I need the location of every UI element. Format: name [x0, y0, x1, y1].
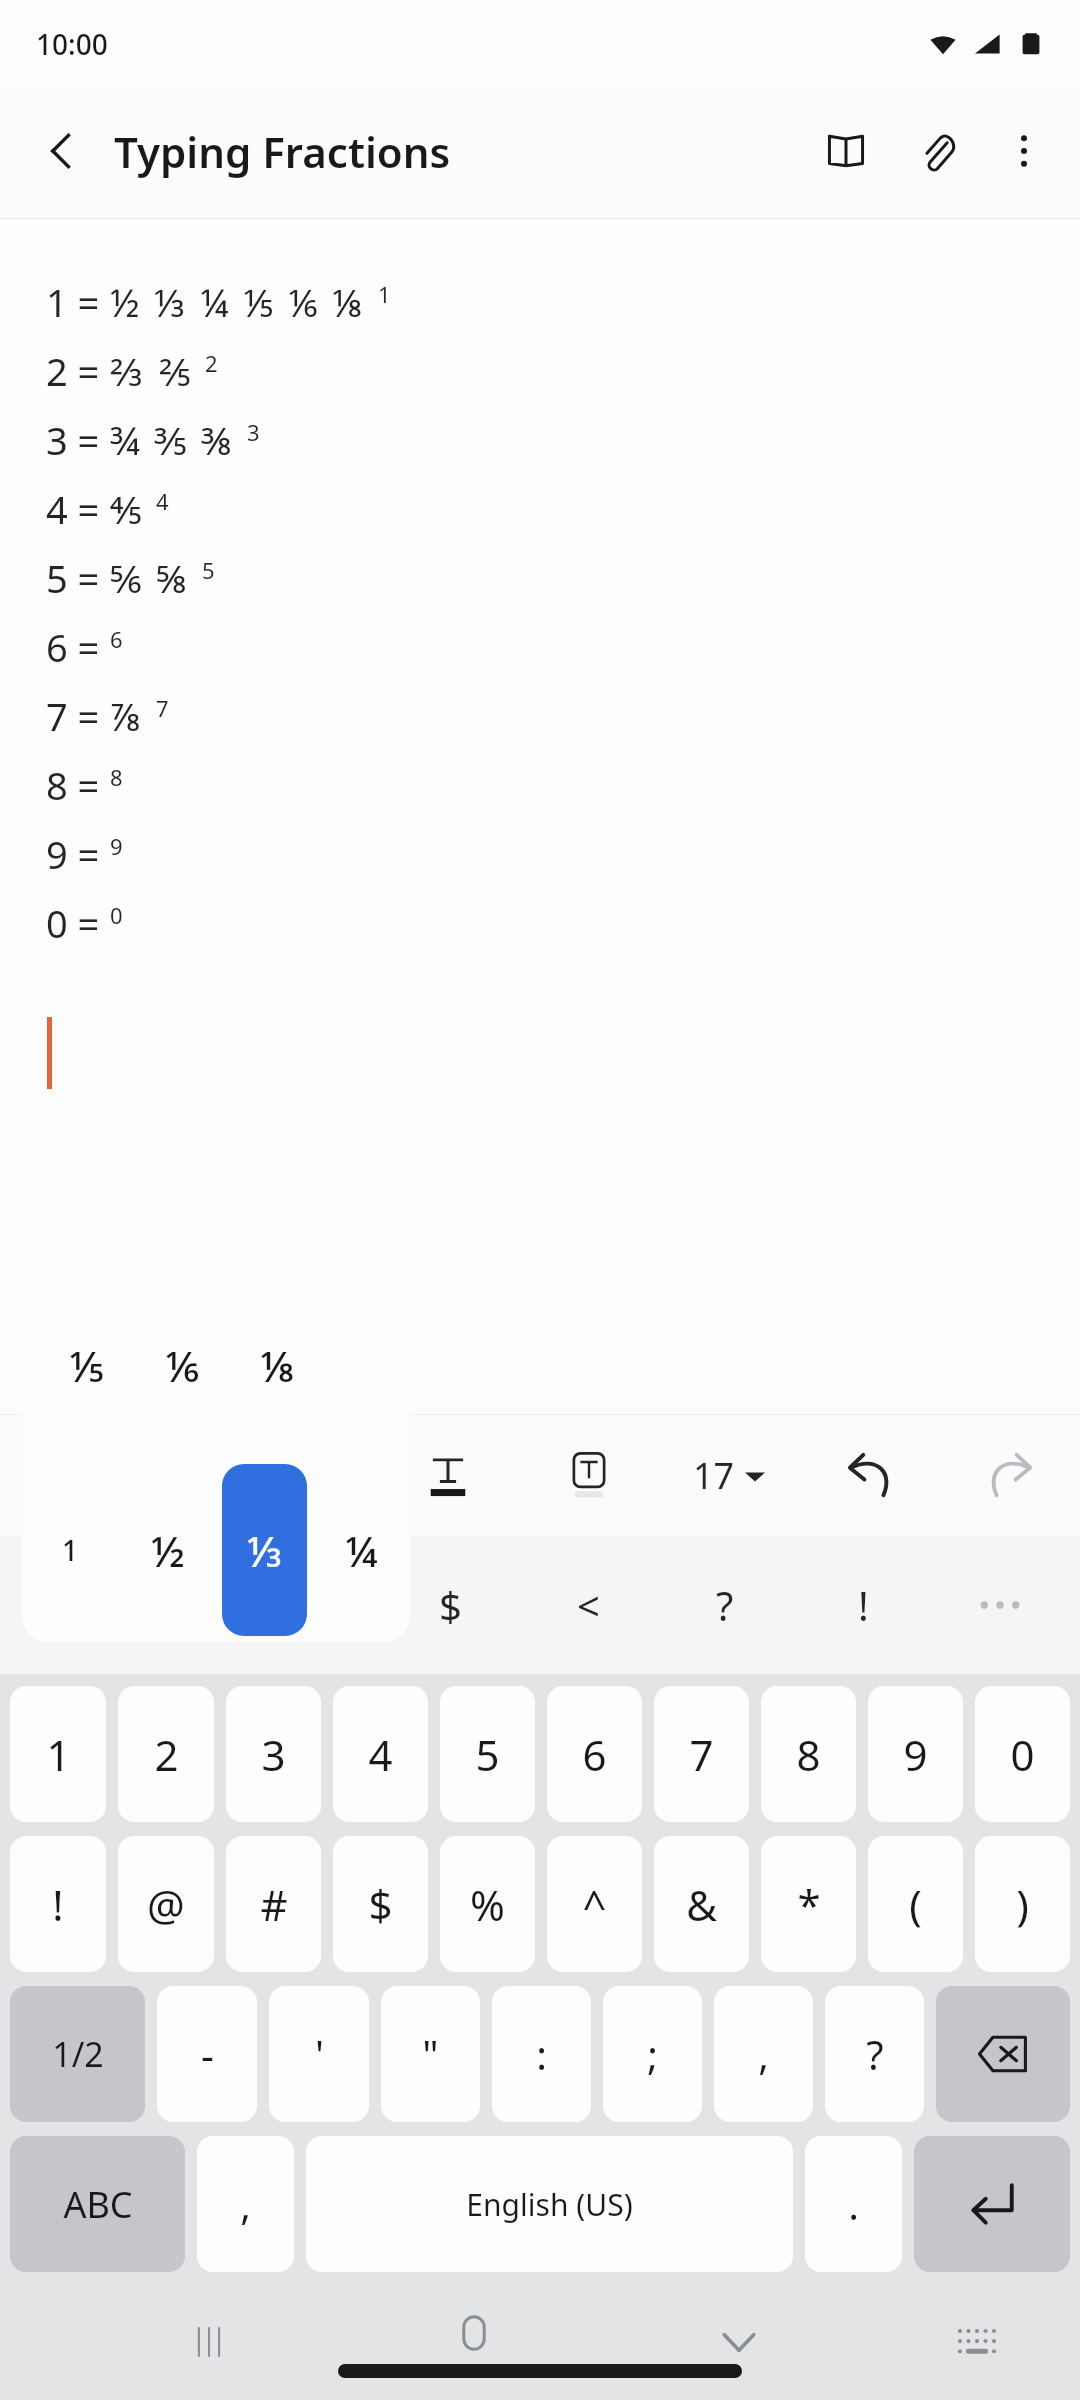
staticText: ,	[240, 2177, 251, 2231]
button[interactable]: 1/2	[10, 1986, 145, 2122]
button[interactable]: ¼	[319, 1485, 404, 1615]
staticText: 10:00	[36, 25, 108, 63]
staticText: ¾	[110, 414, 140, 466]
staticText: )	[1016, 1876, 1029, 1933]
button[interactable]: Back	[18, 107, 106, 195]
staticText: 6 =	[46, 621, 110, 673]
button[interactable]: Recents	[164, 2297, 254, 2387]
button[interactable]: :	[492, 1986, 591, 2122]
button[interactable]: ?	[675, 1555, 775, 1655]
staticText: 8	[110, 762, 123, 792]
staticText: 1	[46, 1726, 71, 1783]
button[interactable]: Highlight	[541, 1427, 637, 1523]
button[interactable]: %	[440, 1836, 535, 1972]
staticText: *	[797, 1876, 821, 1933]
staticText: 9	[110, 831, 123, 861]
button[interactable]: Reading mode	[800, 105, 892, 197]
button[interactable]: ⅙	[134, 1300, 230, 1430]
button[interactable]: Text color	[400, 1427, 496, 1523]
button[interactable]: @	[118, 1836, 214, 1972]
button[interactable]: #	[226, 1836, 321, 1972]
button[interactable]: Enter	[914, 2136, 1070, 2272]
button[interactable]: 7	[654, 1686, 749, 1822]
staticText: -	[201, 2027, 214, 2081]
button[interactable]: English (US)	[306, 2136, 793, 2272]
button[interactable]: Attach	[892, 105, 984, 197]
button[interactable]: (	[868, 1836, 963, 1972]
button[interactable]: 5	[440, 1686, 535, 1822]
button[interactable]: )	[975, 1836, 1070, 1972]
button[interactable]: 2	[118, 1686, 214, 1822]
button[interactable]: 6	[547, 1686, 642, 1822]
staticText: 4	[368, 1726, 393, 1783]
button[interactable]: 1	[10, 1686, 106, 1822]
staticText: ⅛	[332, 276, 364, 328]
button[interactable]: !	[10, 1836, 106, 1972]
staticText: ;	[647, 2027, 658, 2081]
staticText: 2	[205, 348, 218, 378]
button[interactable]: <	[538, 1555, 638, 1655]
button[interactable]: Redo	[962, 1427, 1058, 1523]
button[interactable]: 17	[681, 1437, 777, 1514]
button[interactable]: *	[761, 1836, 856, 1972]
staticText: 1 =	[46, 276, 110, 328]
button[interactable]: .	[805, 2136, 902, 2272]
button[interactable]: -	[157, 1986, 257, 2122]
staticText: 9	[903, 1726, 928, 1783]
button[interactable]: '	[269, 1986, 369, 2122]
button[interactable]: 3	[226, 1686, 321, 1822]
button[interactable]: ;	[603, 1986, 702, 2122]
button[interactable]: 1	[28, 1485, 113, 1615]
button[interactable]: 4	[333, 1686, 428, 1822]
button[interactable]: ABC	[10, 2136, 185, 2272]
button[interactable]: ½	[125, 1485, 210, 1615]
button[interactable]: !	[813, 1555, 913, 1655]
staticText: 7 =	[46, 690, 110, 742]
staticText: ?	[866, 2027, 884, 2081]
button[interactable]: ,	[197, 2136, 294, 2272]
button[interactable]: "	[381, 1986, 480, 2122]
staticText: ^	[582, 1876, 607, 1933]
staticText: ⅙	[288, 276, 318, 328]
staticText: ⅙	[165, 1337, 199, 1394]
staticText: 1/2	[52, 2031, 104, 2077]
button[interactable]: ^	[547, 1836, 642, 1972]
button[interactable]: Switch keyboard	[932, 2297, 1022, 2387]
button[interactable]: ?	[825, 1986, 924, 2122]
staticText: &	[686, 1876, 717, 1933]
button[interactable]: Hide keyboard	[694, 2297, 784, 2387]
staticText: ⅖	[159, 345, 191, 397]
staticText: 17	[693, 1451, 735, 1500]
button[interactable]: 8	[761, 1686, 856, 1822]
staticText: $	[368, 1876, 393, 1933]
staticText: ⅚	[110, 552, 142, 604]
staticText: 5 =	[46, 552, 110, 604]
staticText: ½	[151, 1522, 185, 1579]
staticText: ⅕	[243, 276, 274, 328]
staticText: 0 =	[46, 897, 110, 949]
staticText: ⅓	[154, 276, 186, 328]
button[interactable]: Backspace	[936, 1986, 1070, 2122]
button[interactable]: More options	[984, 111, 1064, 191]
button[interactable]: ⅛	[230, 1300, 326, 1430]
staticText: 5	[202, 555, 215, 585]
button[interactable]: $	[400, 1555, 500, 1655]
staticText: '	[315, 2027, 324, 2081]
staticText: "	[422, 2027, 439, 2081]
button[interactable]: 0	[975, 1686, 1070, 1822]
staticText: !	[858, 1578, 869, 1632]
staticText: 0	[1010, 1726, 1035, 1783]
button[interactable]: ⅕	[38, 1300, 134, 1430]
button[interactable]: ,	[714, 1986, 813, 2122]
button[interactable]: 9	[868, 1686, 963, 1822]
button[interactable]: ⅓	[222, 1464, 307, 1636]
button[interactable]: $	[333, 1836, 428, 1972]
staticText: :	[536, 2027, 547, 2081]
button[interactable]: Home	[419, 2287, 529, 2397]
button[interactable]: More symbols	[950, 1555, 1050, 1655]
button[interactable]: Undo	[822, 1427, 918, 1523]
staticText: ⅞	[110, 690, 142, 742]
button[interactable]: &	[654, 1836, 749, 1972]
staticText: ABC	[63, 2180, 133, 2229]
staticText: ⅘	[110, 483, 142, 535]
